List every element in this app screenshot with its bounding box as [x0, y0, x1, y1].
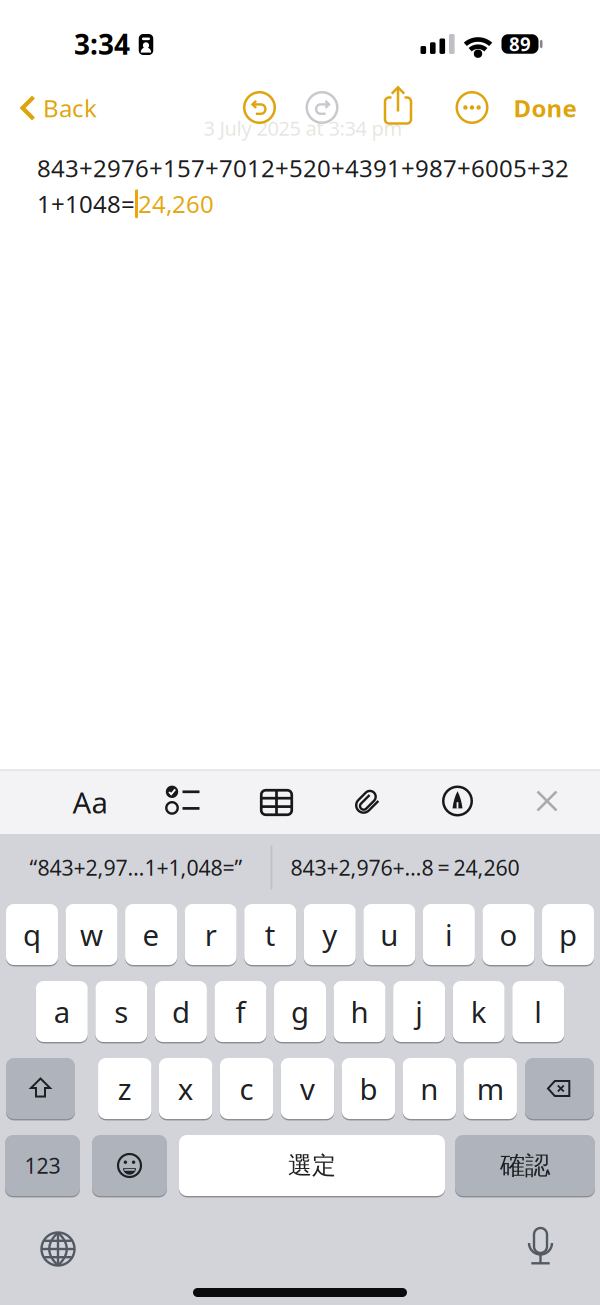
- button[interactable]: u: [363, 904, 415, 965]
- button[interactable]: j: [393, 981, 445, 1042]
- button[interactable]: n: [403, 1058, 456, 1119]
- button[interactable]: Aa: [65, 780, 115, 824]
- button[interactable]: “843+2,97…1+1,048=”: [6, 839, 266, 895]
- staticText: 123: [24, 1151, 60, 1180]
- button[interactable]: 843+2,976+…8 = 24,260: [270, 839, 540, 895]
- button[interactable]: [161, 784, 201, 818]
- staticText: 選定: [288, 1151, 336, 1180]
- button[interactable]: Done: [510, 88, 580, 128]
- staticText: w: [80, 915, 103, 954]
- button[interactable]: y: [304, 904, 356, 965]
- staticText: i: [445, 915, 453, 954]
- button[interactable]: [535, 789, 559, 813]
- staticText: m: [477, 1069, 504, 1108]
- button[interactable]: g: [274, 981, 326, 1042]
- staticText: Done: [513, 92, 576, 124]
- button[interactable]: 選定: [179, 1135, 445, 1196]
- button[interactable]: [383, 86, 413, 124]
- button[interactable]: p: [542, 904, 594, 965]
- staticText: c: [240, 1069, 254, 1108]
- button[interactable]: 123: [5, 1135, 80, 1196]
- button[interactable]: k: [453, 981, 505, 1042]
- button[interactable]: f: [214, 981, 266, 1042]
- staticText: 1+1048=: [37, 188, 135, 220]
- staticText: d: [172, 992, 190, 1031]
- staticText: 確認: [500, 1150, 550, 1181]
- button[interactable]: v: [281, 1058, 334, 1119]
- staticText: 843+2976+157+7012+520+4391+987+6005+32: [37, 152, 569, 184]
- button[interactable]: x: [159, 1058, 212, 1119]
- button[interactable]: [455, 90, 489, 124]
- button[interactable]: [242, 90, 276, 124]
- button[interactable]: m: [463, 1058, 517, 1119]
- staticText: k: [471, 992, 487, 1031]
- staticText: s: [114, 992, 128, 1031]
- button[interactable]: i: [423, 904, 475, 965]
- button[interactable]: l: [512, 981, 564, 1042]
- staticText: e: [143, 915, 160, 954]
- staticText: Back: [43, 92, 97, 124]
- button[interactable]: [92, 1135, 167, 1196]
- staticText: n: [420, 1069, 438, 1108]
- staticText: 24,260: [138, 188, 214, 220]
- button[interactable]: a: [36, 981, 88, 1042]
- button[interactable]: [351, 784, 385, 818]
- staticText: 3:34: [74, 25, 130, 63]
- button[interactable]: [441, 785, 473, 817]
- button[interactable]: Back: [16, 88, 101, 128]
- button[interactable]: r: [185, 904, 237, 965]
- button[interactable]: [525, 1058, 594, 1119]
- staticText: l: [534, 992, 542, 1031]
- staticText: 89: [509, 32, 531, 56]
- staticText: g: [291, 992, 309, 1031]
- button[interactable]: e: [125, 904, 177, 965]
- staticText: Aa: [72, 782, 107, 821]
- button[interactable]: o: [482, 904, 534, 965]
- staticText: q: [23, 915, 41, 954]
- button[interactable]: s: [95, 981, 147, 1042]
- staticText: r: [205, 915, 217, 954]
- staticText: 3 July 2025 at 3:34 pm: [203, 115, 402, 141]
- button[interactable]: c: [220, 1058, 273, 1119]
- staticText: “843+2,97…1+1,048=”: [29, 853, 242, 882]
- button[interactable]: q: [6, 904, 58, 965]
- staticText: p: [559, 915, 577, 954]
- button[interactable]: z: [98, 1058, 151, 1119]
- button[interactable]: b: [342, 1058, 395, 1119]
- staticText: t: [265, 915, 276, 954]
- staticText: z: [118, 1069, 132, 1108]
- staticText: u: [380, 915, 398, 954]
- staticText: y: [322, 915, 337, 954]
- staticText: b: [359, 1069, 377, 1108]
- button[interactable]: d: [155, 981, 207, 1042]
- button[interactable]: 確認: [455, 1135, 595, 1196]
- staticText: f: [235, 992, 245, 1031]
- staticText: 843+2,976+…8 = 24,260: [290, 853, 519, 882]
- button[interactable]: w: [66, 904, 118, 965]
- button[interactable]: [6, 1058, 75, 1119]
- staticText: a: [54, 992, 70, 1031]
- staticText: o: [499, 915, 517, 954]
- staticText: h: [351, 992, 369, 1031]
- button[interactable]: h: [334, 981, 386, 1042]
- button[interactable]: [40, 1231, 76, 1267]
- button[interactable]: [305, 90, 339, 124]
- button[interactable]: [260, 789, 292, 815]
- staticText: v: [300, 1069, 315, 1108]
- staticText: j: [415, 992, 423, 1031]
- button[interactable]: [525, 1227, 555, 1267]
- staticText: x: [178, 1069, 194, 1108]
- button[interactable]: t: [244, 904, 296, 965]
